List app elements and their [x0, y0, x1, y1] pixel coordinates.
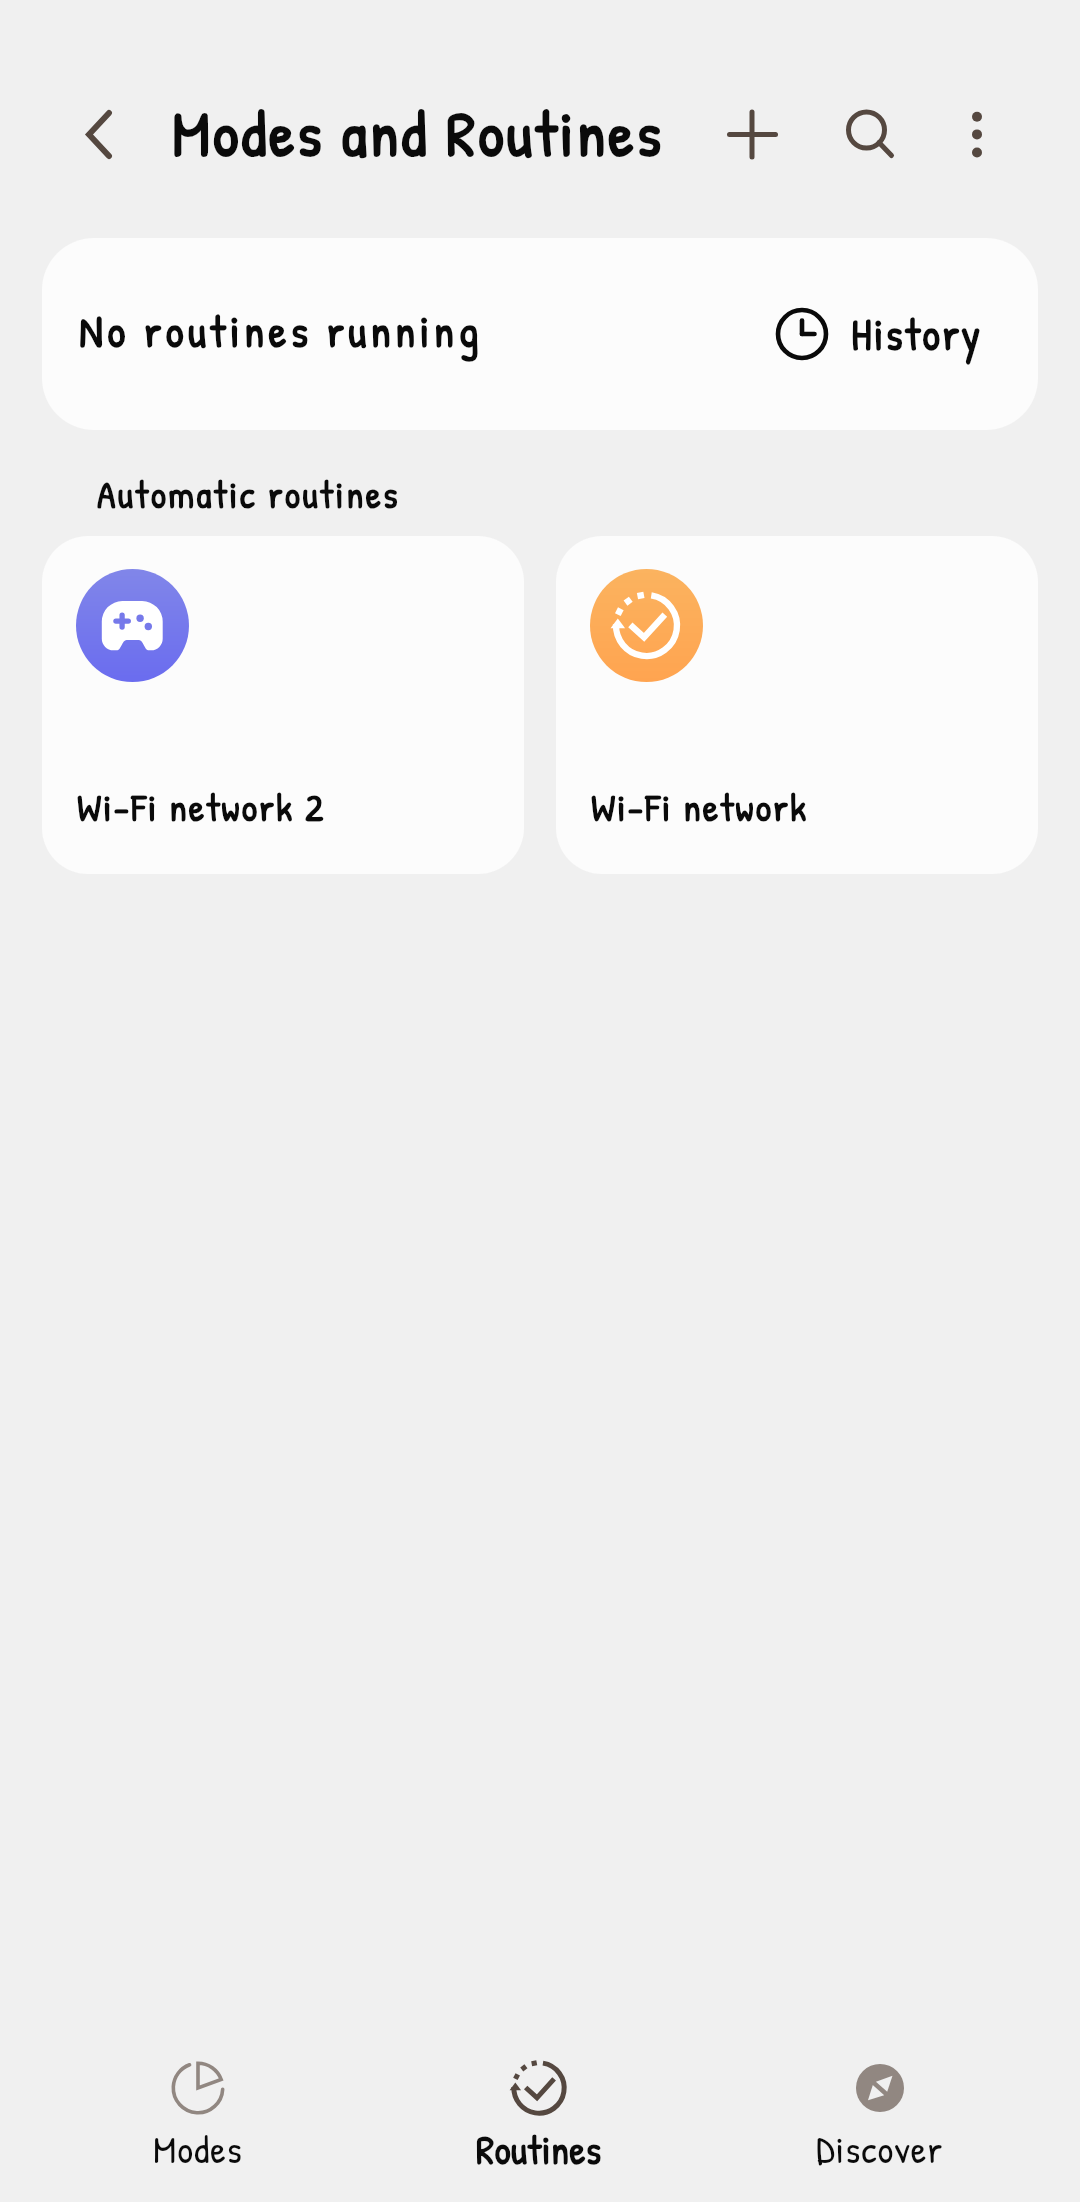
- button[interactable]: Routines: [429, 2030, 649, 2202]
- button[interactable]: History: [774, 280, 983, 388]
- button[interactable]: Discover: [770, 2030, 990, 2202]
- button[interactable]: Search: [817, 80, 917, 180]
- staticText: History: [851, 304, 983, 364]
- button[interactable]: Modes: [88, 2030, 308, 2202]
- staticText: Modes and Routines: [172, 89, 664, 176]
- button[interactable]: Wi-Fi network: [556, 536, 1038, 874]
- staticText: Wi-Fi network: [591, 780, 809, 833]
- button[interactable]: More options: [927, 85, 1027, 185]
- button[interactable]: Add routine: [702, 85, 802, 185]
- staticText: Wi-Fi network 2: [77, 780, 326, 833]
- staticText: Automatic routines: [97, 468, 400, 519]
- staticText: No routines running: [79, 300, 483, 361]
- button[interactable]: Navigate up: [49, 85, 149, 185]
- staticText: Routines: [476, 2122, 602, 2176]
- staticText: Discover: [816, 2122, 944, 2175]
- button[interactable]: No routines running: [42, 238, 1038, 430]
- staticText: Modes: [153, 2122, 243, 2175]
- button[interactable]: Wi-Fi network 2: [42, 536, 524, 874]
